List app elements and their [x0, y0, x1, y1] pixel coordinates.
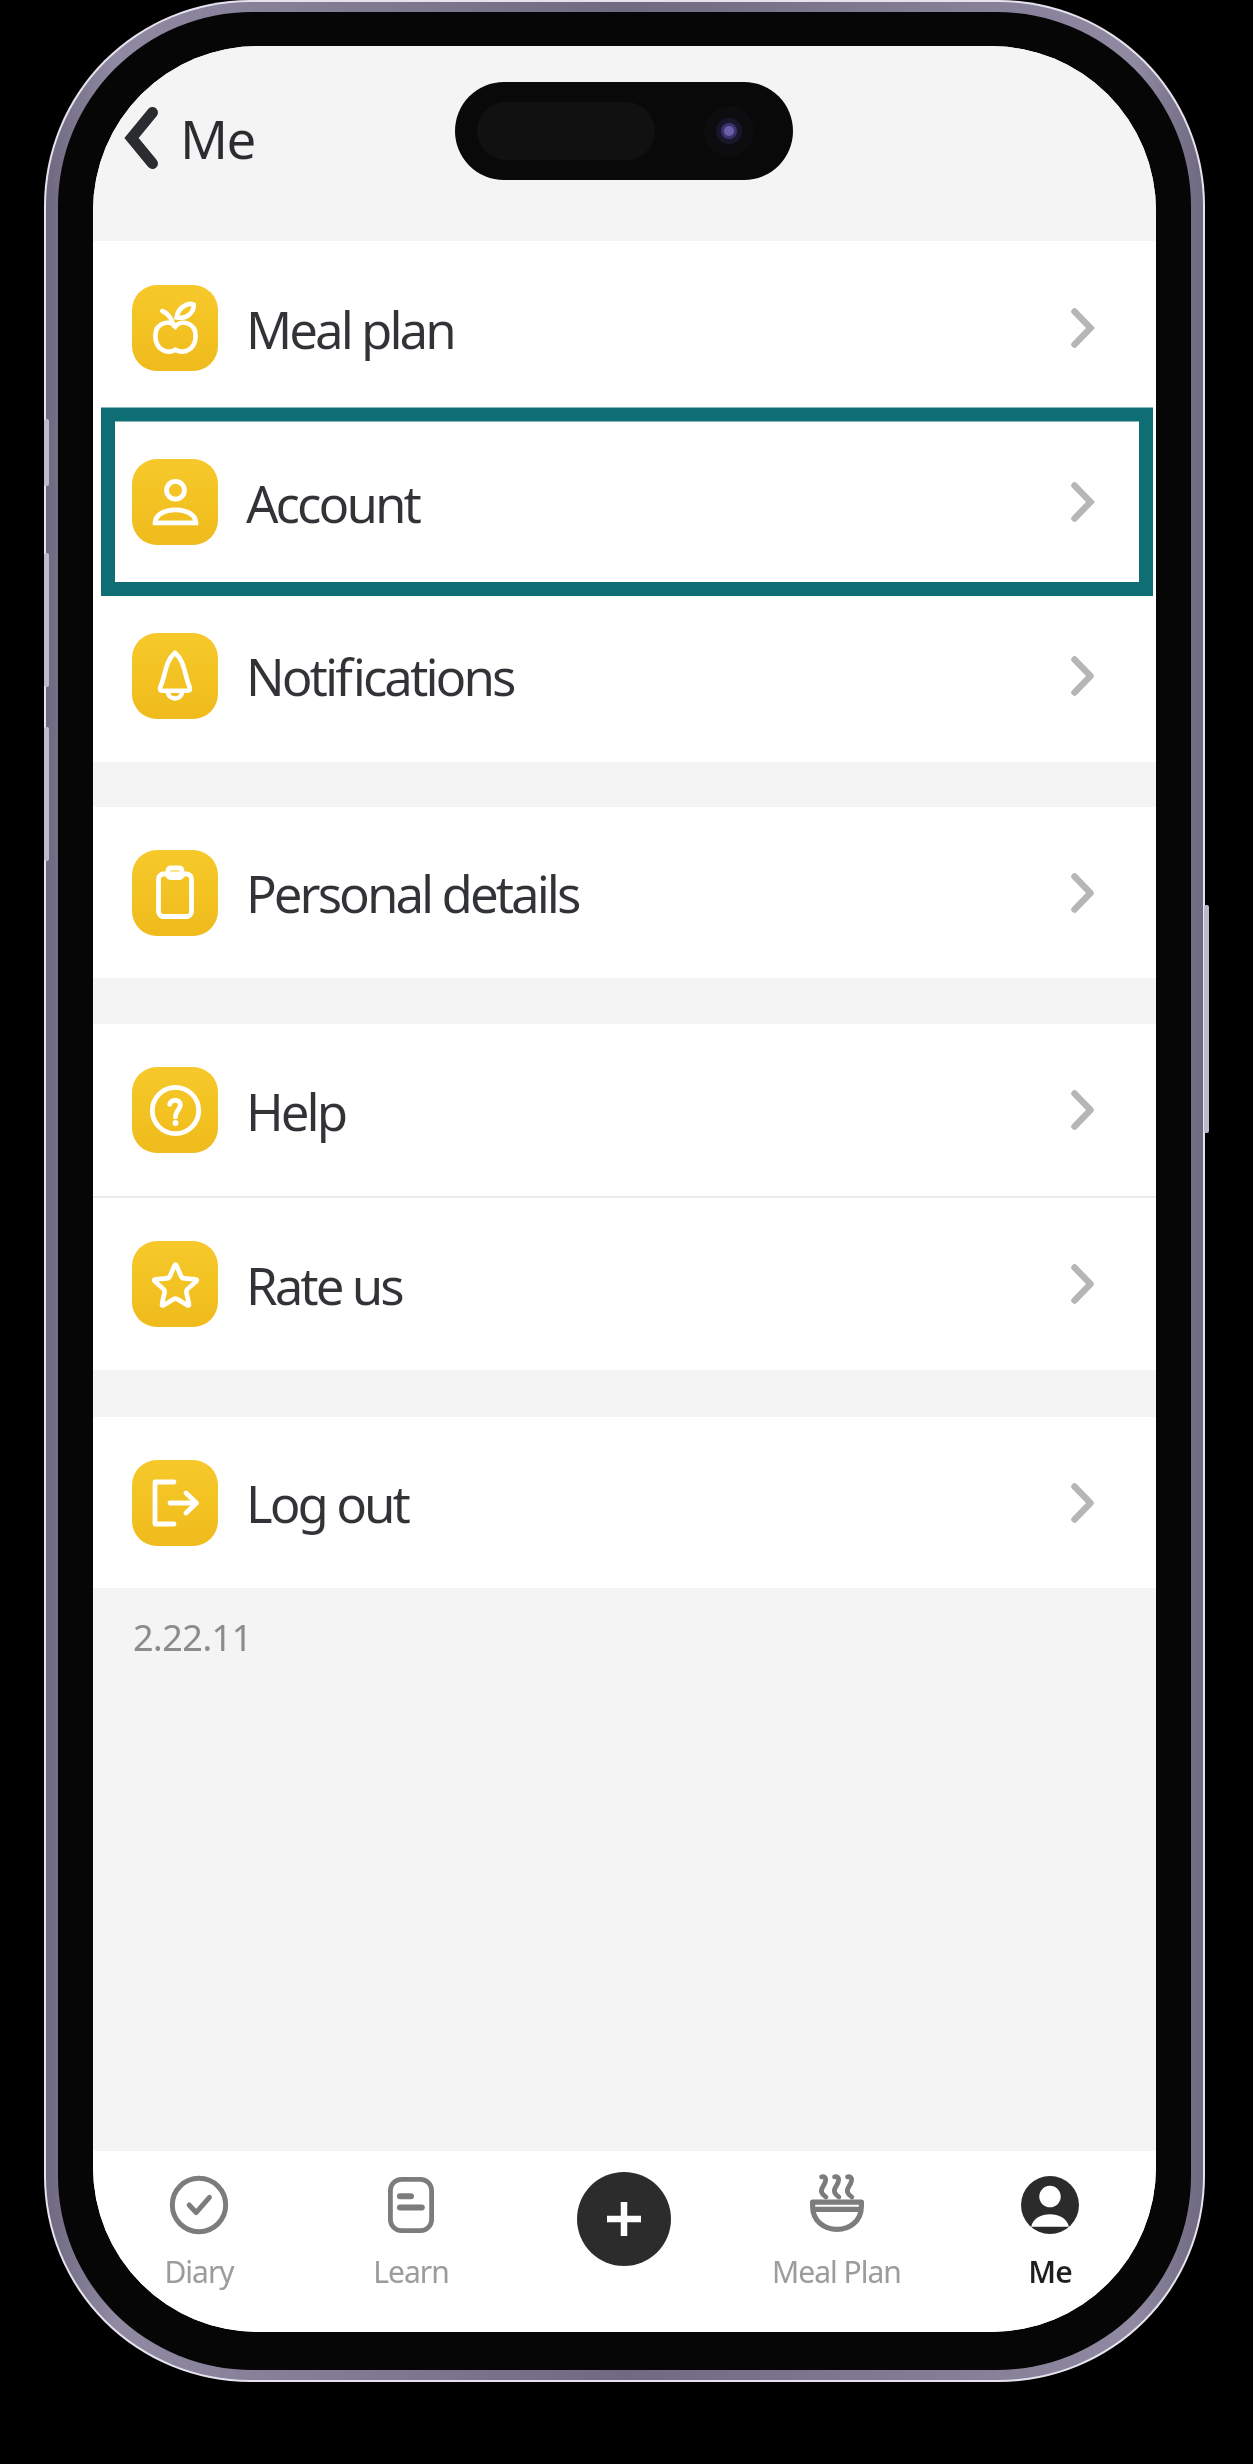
staticText: Me: [1028, 2251, 1072, 2292]
staticText: Account: [246, 468, 419, 537]
button[interactable]: Account: [93, 415, 1156, 589]
staticText: Rate us: [246, 1250, 402, 1319]
button[interactable]: Add entry: [577, 2172, 671, 2266]
staticText: Notifications: [246, 641, 514, 710]
staticText: Diary: [164, 2251, 234, 2292]
staticText: Meal plan: [246, 294, 454, 363]
button[interactable]: Diary: [93, 2151, 305, 2332]
button[interactable]: Help: [93, 1024, 1156, 1196]
button[interactable]: Learn: [305, 2151, 517, 2332]
button[interactable]: Meal Plan: [730, 2151, 943, 2332]
button[interactable]: Rate us: [93, 1198, 1156, 1370]
staticText: Learn: [373, 2251, 449, 2292]
staticText: Meal Plan: [772, 2251, 901, 2292]
staticText: 2.22.11: [133, 1613, 252, 1662]
button[interactable]: Back: [115, 46, 1156, 235]
staticText: Help: [246, 1076, 346, 1145]
staticText: Me: [180, 102, 255, 174]
staticText: Personal details: [246, 858, 579, 927]
button[interactable]: Log out: [93, 1417, 1156, 1588]
button[interactable]: Notifications: [93, 589, 1156, 762]
button[interactable]: Personal details: [93, 807, 1156, 978]
button[interactable]: Me: [943, 2151, 1156, 2332]
staticText: Log out: [246, 1468, 408, 1537]
button[interactable]: Meal plan: [93, 241, 1156, 415]
